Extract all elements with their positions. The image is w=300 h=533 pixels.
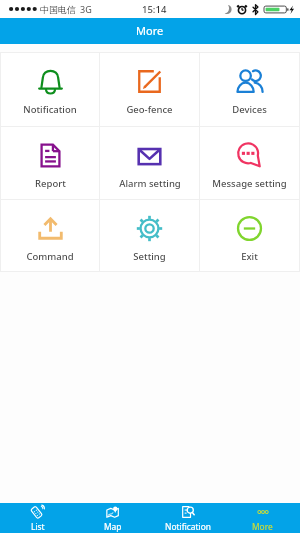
- staticText: Exit: [241, 250, 258, 263]
- button[interactable]: Message setting: [200, 127, 299, 199]
- button[interactable]: Setting: [100, 200, 199, 271]
- staticText: Message setting: [212, 177, 287, 190]
- button[interactable]: More: [225, 503, 300, 533]
- button[interactable]: List: [0, 503, 75, 533]
- button[interactable]: Notification: [1, 53, 99, 126]
- staticText: Notification: [165, 521, 211, 532]
- button[interactable]: Notification: [150, 503, 225, 533]
- button[interactable]: Geo-fence: [100, 53, 199, 126]
- staticText: More: [136, 23, 164, 38]
- staticText: Notification: [23, 103, 77, 116]
- staticText: 15:14: [142, 3, 167, 16]
- staticText: Map: [104, 521, 122, 532]
- button[interactable]: Exit: [200, 200, 299, 271]
- staticText: Alarm setting: [119, 177, 181, 190]
- staticText: 3G: [80, 3, 92, 15]
- staticText: Command: [26, 250, 74, 263]
- staticText: Setting: [133, 250, 166, 263]
- button[interactable]: Map: [75, 503, 150, 533]
- staticText: More: [252, 521, 273, 532]
- staticText: Report: [35, 177, 66, 190]
- staticText: List: [31, 521, 45, 532]
- button[interactable]: Report: [1, 127, 99, 199]
- button[interactable]: Devices: [200, 53, 299, 126]
- staticText: 中国电信: [40, 4, 76, 15]
- staticText: Geo-fence: [126, 103, 173, 116]
- button[interactable]: Command: [1, 200, 99, 271]
- staticText: Devices: [232, 103, 267, 116]
- button[interactable]: Alarm setting: [100, 127, 199, 199]
